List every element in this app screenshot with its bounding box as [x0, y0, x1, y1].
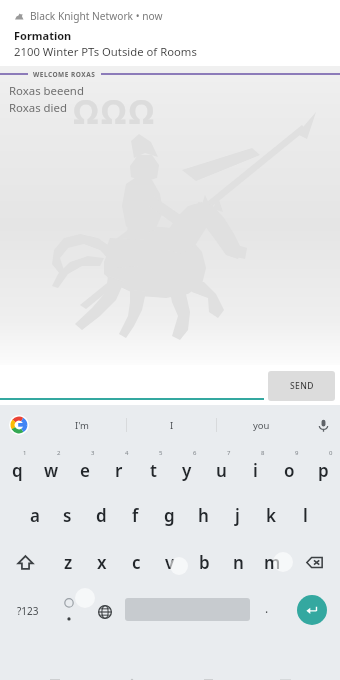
button[interactable]: .: [250, 586, 284, 633]
staticText: n: [233, 551, 244, 574]
staticText: Roxas died: [9, 100, 67, 116]
button[interactable]: l: [288, 492, 322, 539]
staticText: s: [63, 504, 72, 527]
button[interactable]: s: [51, 492, 84, 539]
staticText: m: [264, 551, 281, 574]
staticText: x: [97, 551, 107, 574]
staticText: g: [164, 504, 175, 527]
staticText: .: [265, 600, 269, 616]
button[interactable]: j: [220, 492, 254, 539]
staticText: 3: [91, 449, 95, 457]
staticText: v: [165, 551, 175, 574]
button[interactable]: Black Knight Network • now: [0, 0, 340, 66]
button[interactable]: x: [85, 539, 119, 586]
button[interactable]: n: [221, 539, 255, 586]
button[interactable]: m: [255, 539, 289, 586]
button[interactable]: Change language: [55, 586, 125, 633]
staticText: 0: [329, 449, 333, 457]
staticText: 9: [295, 449, 299, 457]
button[interactable]: h: [186, 492, 220, 539]
staticText: 2100 Winter PTs Outside of Rooms: [14, 44, 197, 59]
button[interactable]: 7: [204, 445, 238, 492]
button[interactable]: you: [217, 405, 306, 445]
button[interactable]: 4: [102, 445, 136, 492]
button[interactable]: c: [119, 539, 153, 586]
staticText: Formation: [14, 28, 72, 43]
button[interactable]: I: [127, 405, 216, 445]
button[interactable]: Enter: [284, 586, 340, 633]
button[interactable]: 9: [272, 445, 306, 492]
staticText: q: [12, 459, 23, 482]
button[interactable]: b: [187, 539, 221, 586]
button[interactable]: g: [152, 492, 186, 539]
button[interactable]: 6: [170, 445, 204, 492]
staticText: l: [303, 504, 308, 527]
button[interactable]: I'm: [38, 405, 126, 445]
button[interactable]: Shift: [0, 539, 51, 586]
staticText: z: [64, 551, 73, 574]
staticText: 2: [57, 449, 61, 457]
staticText: ?123: [17, 604, 39, 618]
staticText: WELCOME ROXAS: [33, 70, 96, 79]
button[interactable]: k: [254, 492, 288, 539]
staticText: a: [30, 504, 40, 527]
staticText: Black Knight Network • now: [30, 9, 163, 23]
staticText: f: [132, 504, 139, 527]
staticText: y: [182, 459, 192, 482]
button[interactable]: 1: [0, 445, 34, 492]
staticText: ΩΩΩ: [73, 88, 157, 134]
staticText: I: [170, 419, 174, 432]
button[interactable]: a: [18, 492, 51, 539]
staticText: h: [198, 504, 209, 527]
button[interactable]: d: [84, 492, 118, 539]
staticText: 7: [227, 449, 231, 457]
staticText: u: [216, 459, 227, 482]
staticText: 5: [159, 449, 163, 457]
button[interactable]: ?123: [0, 586, 55, 633]
staticText: 4: [125, 449, 129, 457]
staticText: e: [80, 459, 90, 482]
button[interactable]: v: [153, 539, 187, 586]
staticText: p: [318, 459, 329, 482]
button[interactable]: Voice input: [306, 405, 340, 445]
button[interactable]: z: [51, 539, 85, 586]
staticText: r: [115, 459, 123, 482]
button[interactable]: 8: [238, 445, 272, 492]
staticText: j: [235, 504, 240, 527]
staticText: I'm: [75, 419, 89, 432]
staticText: Roxas beeend: [9, 83, 84, 99]
staticText: k: [266, 504, 276, 527]
staticText: 1: [23, 449, 27, 457]
button[interactable]: 2: [34, 445, 68, 492]
button[interactable]: 3: [68, 445, 102, 492]
staticText: t: [150, 459, 157, 482]
staticText: w: [44, 459, 59, 482]
staticText: o: [284, 459, 295, 482]
button[interactable]: SEND: [268, 371, 335, 401]
staticText: 8: [261, 449, 265, 457]
button[interactable]: 5: [136, 445, 170, 492]
button[interactable]: Backspace: [289, 539, 340, 586]
staticText: you: [253, 419, 270, 432]
button[interactable]: 0: [306, 445, 340, 492]
staticText: i: [253, 459, 258, 482]
button[interactable]: Google search: [0, 405, 38, 445]
button[interactable]: f: [118, 492, 152, 539]
staticText: SEND: [290, 380, 314, 392]
staticText: c: [132, 551, 141, 574]
staticText: b: [199, 551, 210, 574]
staticText: 6: [193, 449, 197, 457]
staticText: d: [96, 504, 107, 527]
